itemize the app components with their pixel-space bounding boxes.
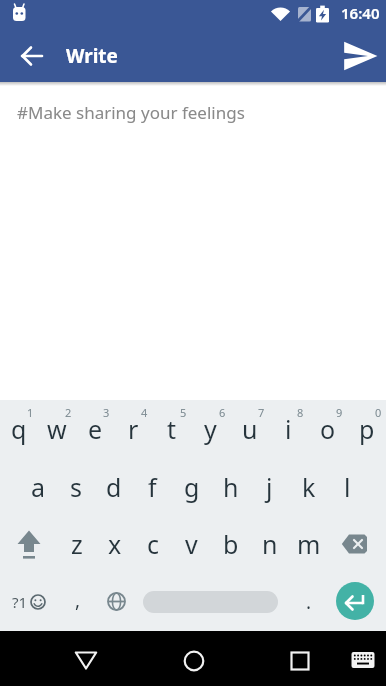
- staticText: ,: [75, 587, 81, 613]
- staticText: o: [320, 412, 336, 446]
- button[interactable]: e: [76, 400, 114, 458]
- button[interactable]: f: [133, 458, 172, 515]
- button[interactable]: v: [172, 515, 211, 572]
- staticText: b: [223, 527, 239, 561]
- staticText: 4: [141, 405, 148, 420]
- staticText: #Make sharing your feelings: [17, 101, 245, 124]
- staticText: 0: [375, 405, 382, 420]
- staticText: d: [106, 470, 122, 504]
- staticText: k: [302, 470, 316, 504]
- staticText: p: [359, 412, 375, 446]
- button[interactable]: q: [0, 400, 38, 458]
- staticText: 2: [65, 405, 72, 420]
- button[interactable]: [62, 636, 110, 684]
- button[interactable]: .: [289, 572, 328, 631]
- button[interactable]: s: [57, 458, 95, 515]
- button[interactable]: ,: [58, 572, 97, 631]
- button[interactable]: t: [152, 400, 191, 458]
- button[interactable]: u: [230, 400, 269, 458]
- button[interactable]: [328, 572, 386, 631]
- staticText: s: [70, 470, 82, 504]
- staticText: c: [147, 527, 160, 561]
- staticText: 7: [258, 405, 265, 420]
- staticText: Write: [66, 43, 118, 69]
- button[interactable]: [328, 515, 386, 572]
- staticText: a: [31, 470, 46, 504]
- staticText: t: [167, 412, 177, 446]
- button[interactable]: [0, 515, 58, 572]
- staticText: g: [184, 470, 200, 504]
- staticText: v: [185, 527, 198, 561]
- staticText: 3: [103, 405, 110, 420]
- button[interactable]: z: [58, 515, 96, 572]
- staticText: 8: [297, 405, 304, 420]
- staticText: i: [285, 412, 292, 446]
- staticText: ?1: [12, 592, 28, 612]
- staticText: 9: [336, 405, 343, 420]
- button[interactable]: [276, 637, 324, 685]
- button[interactable]: k: [289, 458, 328, 515]
- staticText: y: [204, 412, 217, 446]
- staticText: .: [306, 589, 312, 615]
- staticText: n: [262, 527, 278, 561]
- button[interactable]: c: [134, 515, 172, 572]
- button[interactable]: o: [308, 400, 347, 458]
- staticText: 16:40: [341, 3, 380, 23]
- staticText: 1: [27, 405, 34, 420]
- staticText: 5: [180, 405, 187, 420]
- button[interactable]: w: [38, 400, 76, 458]
- button[interactable]: p: [347, 400, 386, 458]
- staticText: j: [266, 470, 273, 504]
- button[interactable]: d: [95, 458, 133, 515]
- staticText: f: [148, 470, 157, 504]
- staticText: h: [223, 470, 239, 504]
- button[interactable]: a: [19, 458, 57, 515]
- staticText: z: [71, 527, 83, 561]
- button[interactable]: g: [172, 458, 211, 515]
- button[interactable]: [170, 637, 218, 685]
- staticText: w: [47, 412, 67, 446]
- staticText: r: [128, 412, 139, 446]
- staticText: u: [242, 412, 258, 446]
- button[interactable]: m: [289, 515, 328, 572]
- button[interactable]: ?1: [0, 572, 58, 631]
- button[interactable]: #Make sharing your feelings: [17, 101, 245, 124]
- button[interactable]: j: [250, 458, 289, 515]
- button[interactable]: n: [250, 515, 289, 572]
- button[interactable]: x: [96, 515, 134, 572]
- staticText: e: [88, 412, 103, 446]
- staticText: l: [344, 470, 351, 504]
- button[interactable]: [136, 572, 289, 631]
- button[interactable]: y: [191, 400, 230, 458]
- button[interactable]: r: [114, 400, 152, 458]
- button[interactable]: [341, 638, 385, 682]
- button[interactable]: [97, 572, 136, 631]
- staticText: q: [11, 412, 27, 446]
- button[interactable]: b: [211, 515, 250, 572]
- staticText: x: [108, 527, 122, 561]
- button[interactable]: l: [328, 458, 367, 515]
- button[interactable]: h: [211, 458, 250, 515]
- button[interactable]: [336, 32, 384, 80]
- staticText: 6: [219, 405, 226, 420]
- staticText: m: [297, 527, 321, 561]
- button[interactable]: [8, 32, 56, 80]
- button[interactable]: i: [269, 400, 308, 458]
